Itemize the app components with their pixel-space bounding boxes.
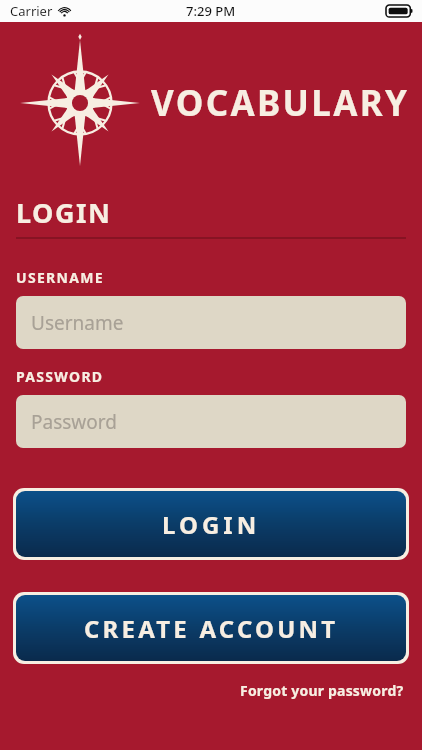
button[interactable]: Forgot your password? <box>238 678 406 703</box>
button[interactable]: LOGIN <box>13 488 409 560</box>
staticText: Password <box>31 409 117 435</box>
staticText: LOGIN <box>16 194 112 231</box>
staticText: Carrier <box>10 2 53 20</box>
staticText: LOGIN <box>162 508 261 541</box>
staticText: USERNAME <box>16 268 104 287</box>
staticText: Username <box>31 310 124 336</box>
staticText: Forgot your password? <box>240 681 404 700</box>
staticText: CREATE ACCOUNT <box>84 612 339 645</box>
other: Compass logo <box>17 40 143 166</box>
button[interactable]: Username <box>16 296 406 349</box>
staticText: 7:29 PM <box>186 2 236 20</box>
staticText: VOCABULARY <box>151 79 410 127</box>
staticText: PASSWORD <box>16 367 104 386</box>
button[interactable]: CREATE ACCOUNT <box>13 592 409 664</box>
button[interactable]: Password <box>16 395 406 448</box>
